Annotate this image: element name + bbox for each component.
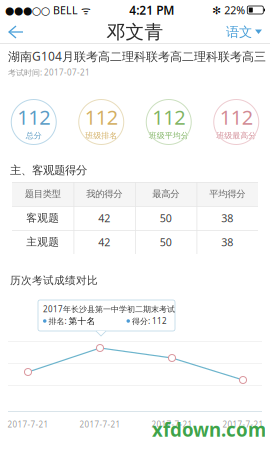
staticText: 2017-7-21 [79,419,120,430]
staticText: 2017-7-21 [151,419,192,430]
staticText: 第十名 [68,315,95,326]
staticText: 语文 [226,24,252,40]
staticText: 2017-7-21 [7,419,48,430]
staticText: 42 [98,235,110,249]
button[interactable]: 语文 [218,20,270,44]
staticText: 排名: [46,316,68,326]
staticText: 湖南G104月联考高二理科联考高二理科联考高三 [8,48,266,64]
staticText: 2017-7-21 [222,419,263,430]
staticText: ●●●○○ BELL [5,3,78,17]
staticText: 邓文青 [106,20,163,43]
staticText: 总分 [26,131,42,141]
staticText: 客观题 [26,211,59,225]
staticText: ᯤ [78,3,91,17]
staticText: xfdown.com [152,417,266,442]
staticText: 主观题 [26,235,59,249]
staticText: 平均得分 [209,188,245,200]
staticText: 2017年长沙县第一中学初二期末考试 [43,304,175,314]
staticText: 112 [85,103,118,130]
staticText: 112 [17,103,50,130]
staticText: 班级排名 [85,131,117,141]
button[interactable]: Back [0,20,32,44]
staticText: 42 [98,211,110,225]
staticText: 历次考试成绩对比 [10,274,98,287]
staticText: 班级最高分 [216,131,256,141]
staticText: 50 [160,211,172,225]
staticText: 38 [221,235,233,249]
staticText: 我的得分 [86,188,122,200]
staticText: 得分: 112 [130,316,167,326]
staticText: 考试时间: 2017-07-21 [8,67,90,78]
staticText: 4:21 PM [129,2,174,18]
staticText: 50 [160,235,172,249]
staticText: 主、客观题得分 [10,163,87,177]
staticText: 题目类型 [25,188,61,200]
staticText: 112 [152,103,185,130]
staticText: 38 [221,211,233,225]
staticText: 112 [220,103,253,130]
staticText: 班级平均分 [149,131,189,141]
staticText: ✻ 22% [212,3,245,17]
staticText: 最高分 [152,188,179,200]
